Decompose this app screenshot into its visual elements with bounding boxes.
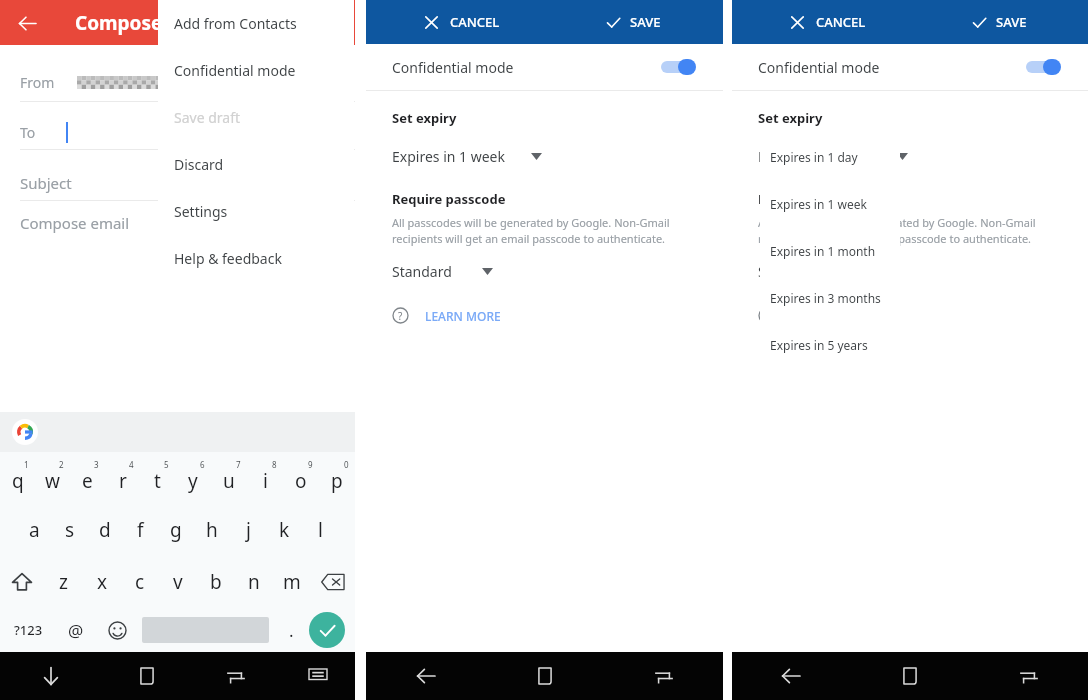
button[interactable]: Expires in 1 week [760,180,900,227]
button[interactable]: Home [102,652,191,700]
staticText: Expires in 1 week [758,147,871,166]
button[interactable]: u [211,452,247,504]
button[interactable]: Expires in 1 week [758,147,908,166]
button[interactable]: b [197,556,235,608]
button[interactable]: CANCEL [424,13,500,31]
button[interactable]: Expires in 1 week [392,147,542,166]
button[interactable]: Back [366,652,485,700]
button[interactable]: Hide keyboard [0,652,102,700]
button[interactable]: d [87,504,122,556]
button[interactable]: Emoji [96,608,138,652]
button[interactable]: q [0,452,35,504]
button[interactable]: Home [485,652,604,700]
button[interactable]: a [17,504,52,556]
staticText: 0 [344,459,349,470]
button[interactable]: f [122,504,158,556]
button[interactable]: w [35,452,70,504]
staticText: SAVE [996,13,1027,31]
staticText: Require passcode [758,190,872,208]
button[interactable]: SAVE [606,13,661,31]
button[interactable]: Save draft [158,94,354,141]
button[interactable]: Expires in 3 months [760,274,900,321]
staticText: ? [398,309,403,323]
button[interactable]: Confidential mode [158,47,354,94]
button[interactable]: Switch keyboard [280,652,355,700]
button[interactable]: Add from Contacts [158,0,354,47]
button[interactable]: Settings [158,188,354,235]
button[interactable]: Discard [158,141,354,188]
staticText: 6 [200,459,205,470]
button[interactable]: c [121,556,159,608]
button[interactable]: Recents [969,652,1088,700]
button[interactable]: Google [12,419,38,445]
staticText: t [154,468,161,494]
button[interactable]: o [283,452,319,504]
button[interactable]: z [44,556,83,608]
button[interactable]: Subject [0,166,355,200]
button[interactable]: . [273,608,309,652]
button[interactable]: ? [758,307,867,324]
button[interactable]: i [247,452,283,504]
button[interactable] [661,59,699,75]
button[interactable]: Back [732,652,850,700]
staticText: Confidential mode [758,58,880,77]
button[interactable]: ?123 [0,608,56,652]
button[interactable]: Enter [309,612,345,648]
button[interactable]: Help & feedback [158,235,354,282]
button[interactable]: j [230,504,266,556]
button[interactable]: Expires in 1 day [760,133,900,180]
button[interactable]: p [319,452,355,504]
staticText: Expires in 5 years [770,337,868,353]
button[interactable]: x [83,556,121,608]
button[interactable]: Home [850,652,969,700]
button[interactable]: Expires in 1 month [760,227,900,274]
button[interactable] [1026,59,1064,75]
button[interactable]: Standard [758,262,859,281]
button[interactable]: s [52,504,87,556]
staticText: s [65,517,75,543]
button[interactable]: Recents [191,652,280,700]
button[interactable]: SAVE [972,13,1027,31]
staticText: Set expiry [758,109,823,127]
button[interactable]: ? [392,307,501,324]
staticText: x [97,569,108,595]
button[interactable]: Confidential mode [366,44,723,90]
staticText: p [331,468,343,494]
button[interactable]: Confidential mode [732,44,1088,90]
button[interactable]: t [140,452,175,504]
button[interactable]: v [159,556,197,608]
staticText: All passcodes will be generated by Googl… [758,215,1036,246]
button[interactable]: Standard [392,262,493,281]
button[interactable]: n [235,556,273,608]
button[interactable]: h [194,504,230,556]
staticText: g [170,517,182,543]
staticText: k [279,517,290,543]
button[interactable]: g [158,504,194,556]
staticText: 5 [164,459,169,470]
button[interactable]: Expires in 5 years [760,321,900,368]
button[interactable]: l [302,504,338,556]
button[interactable]: Backspace [311,556,355,608]
staticText: 3 [94,459,99,470]
staticText: f [137,517,144,543]
staticText: i [263,468,268,494]
button[interactable]: e [70,452,105,504]
staticText: e [82,468,93,494]
staticText: r [119,468,127,494]
button[interactable]: r [105,452,140,504]
staticText: Subject [20,173,72,193]
button[interactable]: @ [56,608,96,652]
button[interactable]: Shift [0,556,44,608]
button[interactable]: k [266,504,302,556]
button[interactable]: Recents [604,652,723,700]
button[interactable]: m [273,556,311,608]
staticText: Expires in 1 day [770,149,858,165]
button[interactable]: CANCEL [790,13,866,31]
button[interactable]: y [175,452,211,504]
button[interactable]: Back [10,6,44,40]
staticText: h [206,517,218,543]
staticText: SAVE [630,13,661,31]
staticText: 9 [308,459,313,470]
staticText: 2 [59,459,64,470]
